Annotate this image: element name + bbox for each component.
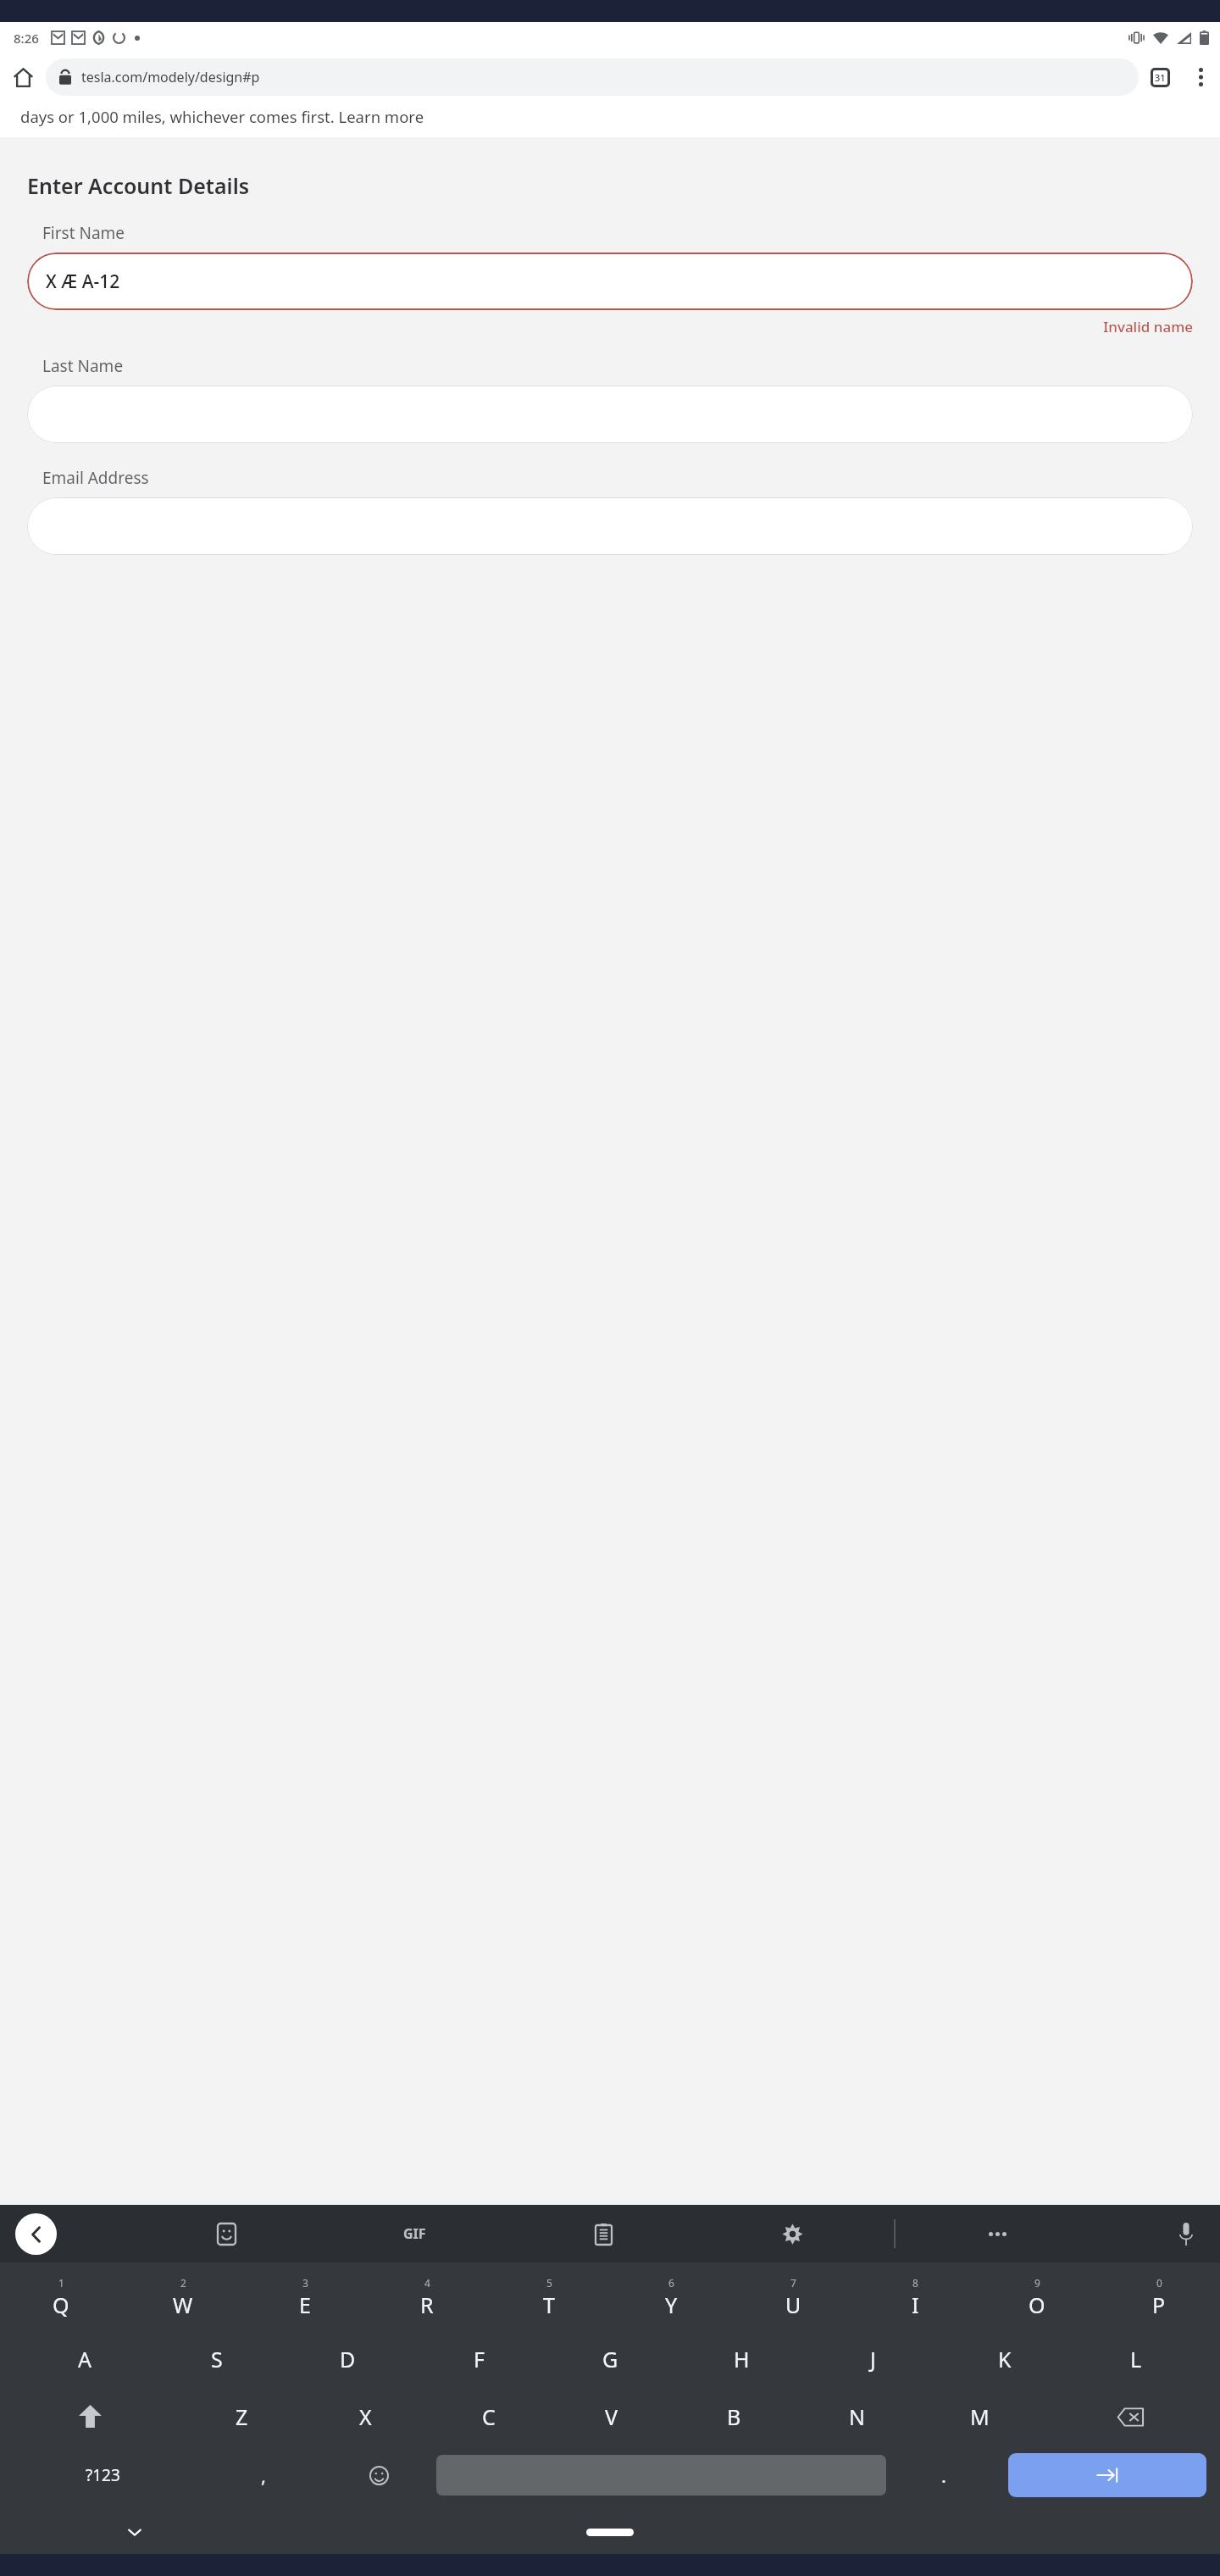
button[interactable]: Shift — [0, 2393, 180, 2440]
button[interactable] — [27, 386, 1193, 443]
button[interactable]: C — [427, 2393, 550, 2440]
staticText: 1 — [58, 2276, 64, 2290]
staticText: D — [340, 2345, 356, 2373]
staticText: 8 — [912, 2276, 918, 2290]
button[interactable]: ?123 — [0, 2451, 206, 2500]
staticText: Last Name — [42, 355, 124, 377]
staticText: T — [543, 2290, 555, 2319]
staticText: R — [420, 2290, 434, 2319]
staticText: tesla.com/modely/design#p — [81, 68, 260, 86]
staticText: F — [474, 2345, 485, 2373]
staticText: V — [605, 2402, 618, 2431]
button[interactable]: V — [550, 2393, 673, 2440]
staticText: X — [359, 2402, 372, 2431]
button[interactable]: D — [282, 2335, 413, 2383]
button[interactable]: 2 — [122, 2269, 244, 2325]
staticText: 0 — [1156, 2276, 1162, 2290]
staticText: X Æ A-12 — [46, 269, 120, 294]
staticText: . — [941, 2462, 946, 2488]
button[interactable]: , — [206, 2451, 321, 2500]
button[interactable]: G — [545, 2335, 676, 2383]
staticText: E — [299, 2290, 311, 2319]
staticText: ?123 — [86, 2464, 120, 2486]
staticText: days or 1,000 miles, whichever comes fir… — [20, 106, 424, 127]
button[interactable]: Tabs, 31 open — [1139, 53, 1181, 101]
staticText: K — [998, 2345, 1012, 2373]
staticText: 3 — [302, 2276, 308, 2290]
staticText: J — [870, 2345, 876, 2373]
button[interactable]: M — [918, 2393, 1041, 2440]
button[interactable]: Hide keyboard — [117, 2514, 152, 2550]
button[interactable]: More options — [1181, 53, 1220, 101]
staticText: I — [912, 2290, 919, 2319]
button[interactable]: Emoji — [321, 2451, 436, 2500]
staticText: Z — [236, 2402, 248, 2431]
staticText: Invalid name — [27, 317, 1193, 336]
button[interactable]: L — [1070, 2335, 1201, 2383]
staticText: GIF — [403, 2224, 426, 2243]
button[interactable]: 8 — [854, 2269, 976, 2325]
staticText: G — [602, 2345, 618, 2373]
staticText: Enter Account Details — [27, 171, 250, 200]
button[interactable]: X — [303, 2393, 427, 2440]
button[interactable]: J — [807, 2335, 939, 2383]
staticText: 5 — [546, 2276, 552, 2290]
button[interactable]: X Æ A-12 — [27, 253, 1193, 310]
staticText: Y — [665, 2290, 678, 2319]
button[interactable] — [27, 497, 1193, 555]
button[interactable]: Back — [15, 2213, 57, 2255]
staticText: 8:26 — [14, 30, 39, 47]
staticText: 9 — [1034, 2276, 1040, 2290]
button[interactable]: Next — [1008, 2453, 1206, 2497]
staticText: Q — [53, 2290, 69, 2319]
button[interactable]: Backspace — [1041, 2393, 1220, 2440]
staticText: 6 — [668, 2276, 674, 2290]
button[interactable]: Clipboard — [585, 2215, 622, 2252]
staticText: 4 — [424, 2276, 430, 2290]
button[interactable]: A — [19, 2335, 151, 2383]
button[interactable]: 3 — [244, 2269, 366, 2325]
staticText: S — [211, 2345, 223, 2373]
button[interactable]: Stickers — [208, 2215, 245, 2252]
button[interactable]: S — [151, 2335, 282, 2383]
button[interactable]: . — [886, 2451, 1001, 2500]
button[interactable]: 9 — [976, 2269, 1098, 2325]
button[interactable]: B — [673, 2393, 796, 2440]
staticText: O — [1029, 2290, 1045, 2319]
button[interactable]: H — [676, 2335, 807, 2383]
button[interactable]: Voice input — [1167, 2215, 1205, 2252]
button[interactable]: 6 — [610, 2269, 732, 2325]
button[interactable]: 4 — [366, 2269, 488, 2325]
button[interactable]: Settings — [774, 2215, 811, 2252]
staticText: W — [173, 2290, 193, 2319]
staticText: Email Address — [42, 467, 149, 489]
staticText: P — [1152, 2290, 1166, 2319]
button[interactable]: 1 — [0, 2269, 122, 2325]
button[interactable]: F — [413, 2335, 545, 2383]
button[interactable]: N — [796, 2393, 918, 2440]
staticText: C — [482, 2402, 496, 2431]
staticText: 7 — [790, 2276, 796, 2290]
staticText: M — [970, 2402, 990, 2431]
button[interactable]: tesla.com/modely/design#p — [46, 58, 1139, 96]
staticText: A — [78, 2345, 91, 2373]
staticText: 2 — [180, 2276, 186, 2290]
button[interactable]: K — [939, 2335, 1070, 2383]
staticText: B — [727, 2402, 741, 2431]
button[interactable]: 5 — [488, 2269, 610, 2325]
staticText: N — [849, 2402, 866, 2431]
staticText: U — [785, 2290, 801, 2319]
button[interactable]: 7 — [732, 2269, 854, 2325]
staticText: L — [1130, 2345, 1142, 2373]
staticText: First Name — [42, 222, 125, 244]
staticText: 31 — [1155, 71, 1166, 84]
button[interactable]: Home — [0, 53, 46, 101]
staticText: , — [261, 2462, 266, 2488]
button[interactable]: GIF — [396, 2215, 433, 2252]
staticText: H — [734, 2345, 750, 2373]
button[interactable]: Z — [180, 2393, 303, 2440]
button[interactable]: 0 — [1098, 2269, 1220, 2325]
button[interactable]: More — [979, 2215, 1016, 2252]
